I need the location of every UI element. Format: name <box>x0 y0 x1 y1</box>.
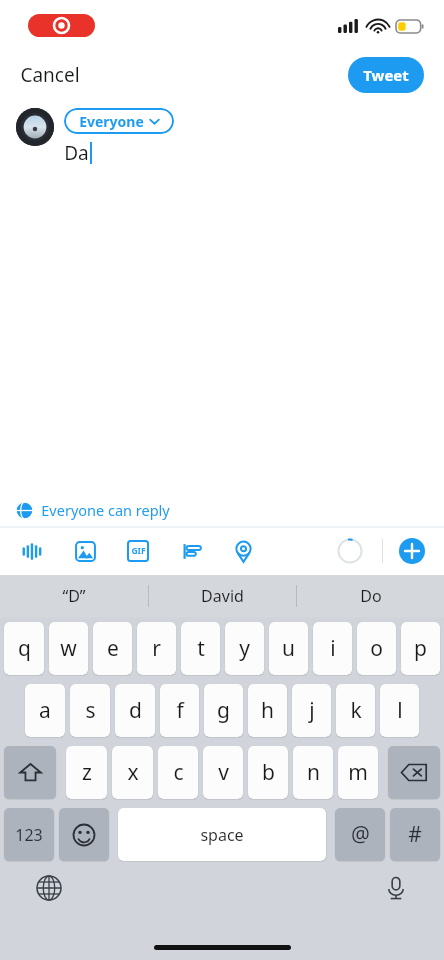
button[interactable]: z <box>66 746 107 799</box>
button[interactable]: c <box>158 746 198 799</box>
button[interactable]: Add photo <box>71 537 99 565</box>
button[interactable]: Numbers <box>4 808 54 861</box>
button[interactable]: y <box>225 622 264 675</box>
button[interactable]: Audio <box>18 537 46 565</box>
button[interactable]: p <box>401 622 440 675</box>
staticText: s <box>85 696 96 725</box>
button[interactable]: Add GIF <box>124 537 152 565</box>
staticText: # <box>408 820 422 849</box>
staticText: y <box>239 634 250 663</box>
staticText: x <box>127 758 139 787</box>
staticText: w <box>60 634 77 663</box>
button[interactable]: “D” <box>0 575 148 617</box>
staticText: m <box>348 758 368 787</box>
staticText: h <box>261 696 274 725</box>
staticText: GIF <box>131 545 146 557</box>
button[interactable]: m <box>338 746 378 799</box>
staticText: g <box>217 696 230 725</box>
staticText: c <box>173 758 184 787</box>
staticText: i <box>330 634 336 663</box>
staticText: k <box>350 696 362 725</box>
staticText: David <box>201 585 244 607</box>
button[interactable]: Everyone <box>64 108 174 134</box>
staticText: o <box>370 634 383 663</box>
button[interactable]: k <box>336 684 375 737</box>
staticText: Everyone can reply <box>41 500 170 520</box>
staticText: Do <box>360 585 382 607</box>
staticText: Tweet <box>363 65 409 85</box>
staticText: v <box>218 758 229 787</box>
staticText: space <box>200 824 244 846</box>
button[interactable]: At sign <box>335 808 385 861</box>
button[interactable]: space <box>118 808 326 861</box>
staticText: a <box>39 696 51 725</box>
button[interactable]: o <box>357 622 396 675</box>
button[interactable]: Cancel <box>20 62 80 88</box>
staticText: Da <box>64 140 89 166</box>
button[interactable]: Dictation <box>379 871 413 905</box>
button[interactable]: i <box>313 622 352 675</box>
staticText: t <box>197 634 205 663</box>
staticText: f <box>176 696 184 725</box>
button[interactable]: Poll <box>177 537 205 565</box>
button[interactable]: r <box>137 622 176 675</box>
button[interactable]: e <box>93 622 132 675</box>
button[interactable]: h <box>248 684 287 737</box>
staticText: Cancel <box>20 62 80 88</box>
button[interactable]: David <box>149 575 296 617</box>
button[interactable]: t <box>181 622 220 675</box>
button[interactable]: Backspace <box>388 746 440 799</box>
button[interactable]: d <box>115 684 155 737</box>
staticText: d <box>129 696 142 725</box>
button[interactable]: j <box>292 684 331 737</box>
button[interactable]: Do <box>297 575 444 617</box>
staticText: z <box>82 758 92 787</box>
button[interactable]: n <box>293 746 333 799</box>
staticText: q <box>18 634 31 663</box>
staticText: “D” <box>62 585 86 607</box>
button[interactable]: v <box>203 746 243 799</box>
staticText: e <box>107 634 119 663</box>
button[interactable]: l <box>380 684 419 737</box>
button[interactable]: u <box>269 622 308 675</box>
staticText: n <box>307 758 320 787</box>
staticText: u <box>282 634 295 663</box>
staticText: 123 <box>15 824 43 846</box>
button[interactable]: Shift <box>4 746 56 799</box>
button[interactable]: a <box>25 684 65 737</box>
staticText: b <box>262 758 275 787</box>
button[interactable] <box>16 108 54 146</box>
button[interactable]: Add tweet <box>399 538 425 564</box>
button[interactable]: Change keyboard <box>32 871 66 905</box>
button[interactable]: Hashtag <box>390 808 440 861</box>
staticText: l <box>397 696 403 725</box>
staticText: Everyone <box>79 112 144 131</box>
button[interactable]: g <box>204 684 243 737</box>
button[interactable]: Location <box>229 537 257 565</box>
button[interactable]: f <box>160 684 199 737</box>
button[interactable]: q <box>4 622 44 675</box>
staticText: @ <box>351 820 370 849</box>
staticText: j <box>309 696 315 725</box>
button[interactable]: Screen recording <box>28 14 95 37</box>
button[interactable]: s <box>70 684 110 737</box>
staticText: r <box>152 634 161 663</box>
button[interactable]: w <box>49 622 88 675</box>
staticText: p <box>414 634 427 663</box>
button[interactable]: b <box>248 746 288 799</box>
button[interactable]: Everyone can reply <box>0 493 444 527</box>
button[interactable]: Tweet <box>348 57 424 93</box>
button[interactable]: Emoji <box>59 808 109 861</box>
button[interactable]: x <box>112 746 153 799</box>
